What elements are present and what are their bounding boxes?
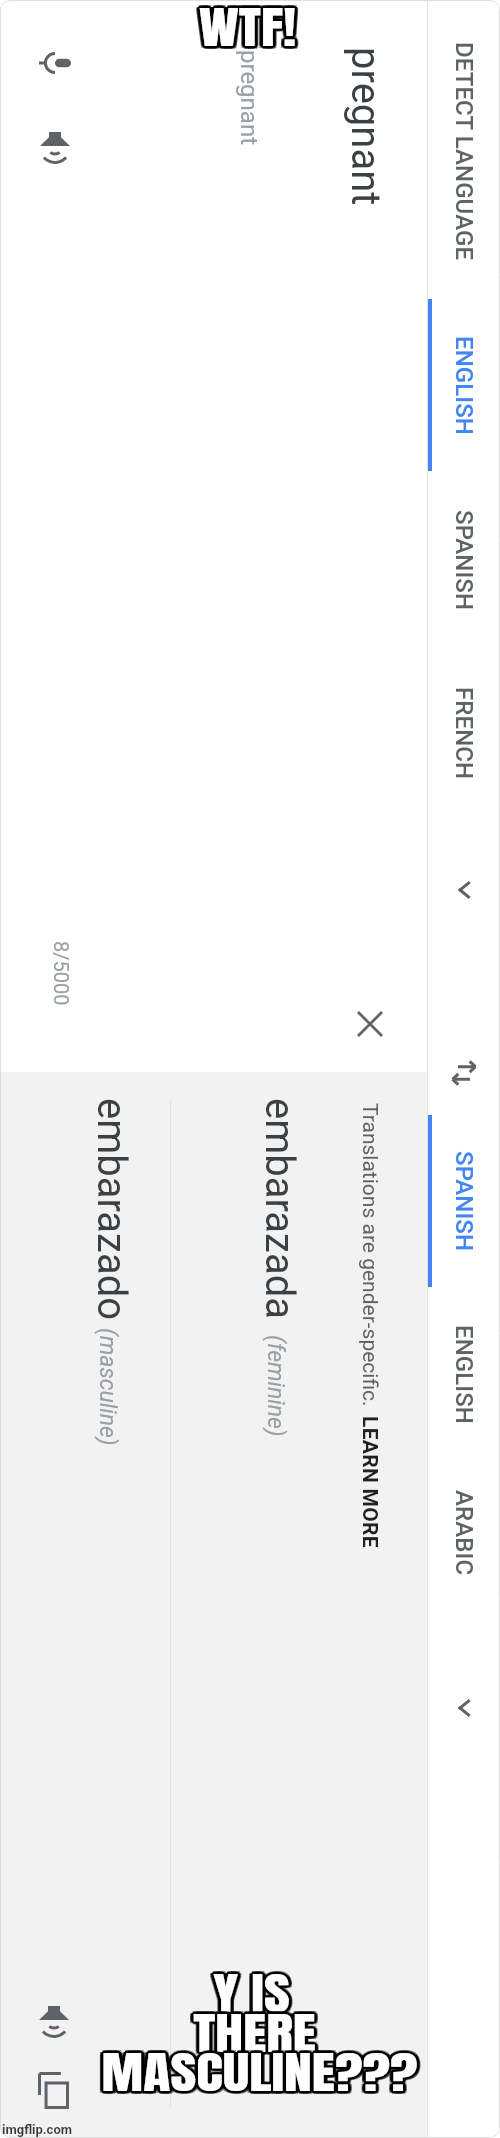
staticText: Y IS	[213, 1958, 290, 2024]
button[interactable]: DETECT LANGUAGE	[428, 26, 500, 276]
staticText: imgflip.com	[2, 2122, 72, 2137]
staticText: Y IS	[215, 1959, 293, 2025]
staticText: THERE	[193, 2000, 316, 2066]
staticText: MASCULINE???	[99, 2040, 415, 2106]
button[interactable]: Listen	[27, 119, 83, 175]
staticText: MASCULINE???	[99, 2038, 415, 2104]
staticText: MASCULINE???	[105, 2039, 421, 2105]
staticText: MASCULINE???	[101, 2039, 418, 2105]
staticText: MASCULINE???	[100, 2036, 416, 2102]
staticText: THERE	[192, 2001, 315, 2067]
staticText: WTF!	[197, 0, 295, 63]
staticText: MASCULINE???	[101, 2037, 418, 2103]
button[interactable]: ENGLISH	[428, 299, 500, 471]
staticText: Y IS	[213, 1962, 290, 2028]
button[interactable]: Listen translation	[26, 1993, 82, 2049]
staticText: WTF!	[201, 0, 299, 63]
staticText: MASCULINE???	[103, 2038, 419, 2104]
staticText: DETECT LANGUAGE	[450, 42, 478, 261]
staticText: THERE	[190, 1999, 314, 2065]
staticText: THERE	[194, 1998, 317, 2064]
button[interactable]: ARABIC	[428, 1453, 500, 1613]
staticText: MASCULINE???	[98, 2038, 414, 2104]
staticText: Y IS	[211, 1961, 289, 2027]
button[interactable]: Clear text	[342, 996, 398, 1052]
staticText: Y IS	[210, 1960, 288, 2026]
staticText: MASCULINE???	[98, 2041, 414, 2107]
staticText: THERE	[192, 1997, 315, 2063]
staticText: Y IS	[214, 1959, 291, 2025]
staticText: Y IS	[213, 1963, 290, 2029]
staticText: WTF!	[197, 0, 295, 61]
staticText: WTF!	[200, 0, 298, 59]
staticText: Y IS	[209, 1960, 286, 2026]
staticText: Y IS	[211, 1957, 289, 2023]
staticText: Translations are gender-specific.	[357, 1103, 382, 1407]
staticText: WTF!	[197, 0, 295, 57]
staticText: Y IS	[211, 1962, 289, 2028]
staticText: WTF!	[200, 0, 298, 61]
staticText: WTF!	[201, 0, 299, 57]
staticText: MASCULINE???	[101, 2036, 418, 2102]
staticText: THERE	[195, 1997, 319, 2063]
staticText: THERE	[193, 1998, 316, 2064]
staticText: WTF!	[202, 0, 300, 62]
button[interactable]: Copy translation	[26, 2062, 82, 2118]
staticText: MASCULINE???	[105, 2041, 421, 2107]
staticText: WTF!	[195, 0, 293, 62]
staticText: Y IS	[209, 1959, 286, 2025]
staticText: Y IS	[214, 1961, 291, 2027]
staticText: ARABIC	[450, 1490, 478, 1576]
button[interactable]: More target languages	[428, 1672, 500, 1744]
staticText: MASCULINE???	[103, 2041, 419, 2107]
button[interactable]: SPANISH	[428, 1115, 500, 1287]
button[interactable]: SPANISH	[428, 474, 500, 646]
staticText: Y IS	[210, 1959, 288, 2025]
staticText: MASCULINE???	[104, 2038, 420, 2104]
staticText: pregnant	[342, 47, 389, 206]
staticText: THERE	[194, 2002, 317, 2068]
staticText: MASCULINE???	[103, 2037, 419, 2103]
staticText: (masculine)	[94, 1328, 121, 1446]
button[interactable]: Speak	[27, 35, 83, 91]
staticText: THERE	[195, 1999, 319, 2065]
staticText: THERE	[190, 2001, 314, 2067]
staticText: MASCULINE???	[100, 2041, 416, 2107]
staticText: Y IS	[217, 1959, 294, 2025]
staticText: LEARN MORE	[357, 1416, 382, 1548]
staticText: pregnant	[235, 50, 263, 146]
staticText: MASCULINE???	[100, 2037, 416, 2103]
staticText: THERE	[193, 1997, 316, 2063]
staticText: ENGLISH	[450, 1325, 478, 1424]
staticText: THERE	[192, 1999, 315, 2065]
staticText: THERE	[190, 2000, 314, 2066]
staticText: THERE	[195, 2001, 319, 2067]
staticText: Y IS	[215, 1957, 293, 2023]
staticText: WTF!	[200, 0, 298, 58]
staticText: WTF!	[196, 0, 294, 61]
staticText: THERE	[189, 2000, 312, 2066]
button[interactable]: More source languages	[428, 854, 500, 926]
staticText: WTF!	[202, 0, 300, 60]
staticText: THERE	[189, 2002, 312, 2068]
staticText: embarazada	[256, 1098, 303, 1319]
staticText: WTF!	[202, 0, 300, 59]
staticText: MASCULINE???	[100, 2040, 416, 2106]
staticText: THERE	[193, 2003, 316, 2069]
staticText: (feminine)	[262, 1335, 289, 1437]
staticText: THERE	[197, 1999, 320, 2065]
button[interactable]: Swap languages	[428, 1037, 500, 1109]
staticText: MASCULINE???	[104, 2040, 420, 2106]
staticText: Y IS	[213, 1957, 290, 2023]
staticText: THERE	[192, 2003, 315, 2069]
button[interactable]: ENGLISH	[428, 1288, 500, 1460]
staticText: THERE	[193, 2002, 316, 2068]
staticText: WTF!	[197, 0, 295, 58]
staticText: Y IS	[217, 1962, 294, 2028]
button[interactable]: FRENCH	[428, 647, 500, 819]
staticText: THERE	[197, 2000, 320, 2066]
staticText: WTF!	[199, 0, 296, 60]
staticText: WTF!	[201, 0, 299, 60]
staticText: 8/5000	[50, 941, 73, 1006]
staticText: MASCULINE???	[105, 2038, 421, 2104]
